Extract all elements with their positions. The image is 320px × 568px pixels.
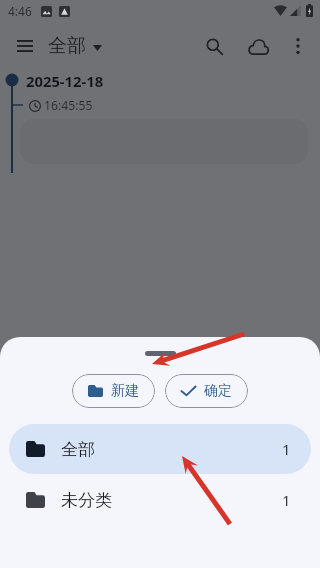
staticText: 新建 (111, 382, 139, 400)
button[interactable]: 确定 (165, 374, 248, 408)
staticText: 确定 (204, 382, 232, 400)
staticText: 16:45:55 (44, 97, 93, 114)
staticText: 2025-12-18 (26, 71, 104, 91)
button[interactable]: 未分类 (9, 475, 311, 525)
button[interactable]: Search (194, 26, 234, 66)
staticText: 1 (282, 439, 291, 459)
button[interactable]: More options (278, 26, 318, 66)
staticText: 4:46 (8, 3, 32, 19)
staticText: 未分类 (61, 490, 112, 511)
button[interactable]: Cloud (238, 26, 278, 66)
staticText: 全部 (48, 34, 86, 58)
button[interactable]: Menu (5, 26, 45, 66)
button[interactable]: 全部 (46, 24, 104, 68)
staticText: 1 (282, 490, 291, 510)
staticText: 全部 (61, 439, 95, 460)
button[interactable]: 新建 (72, 374, 155, 408)
button[interactable]: 全部 (9, 424, 311, 474)
